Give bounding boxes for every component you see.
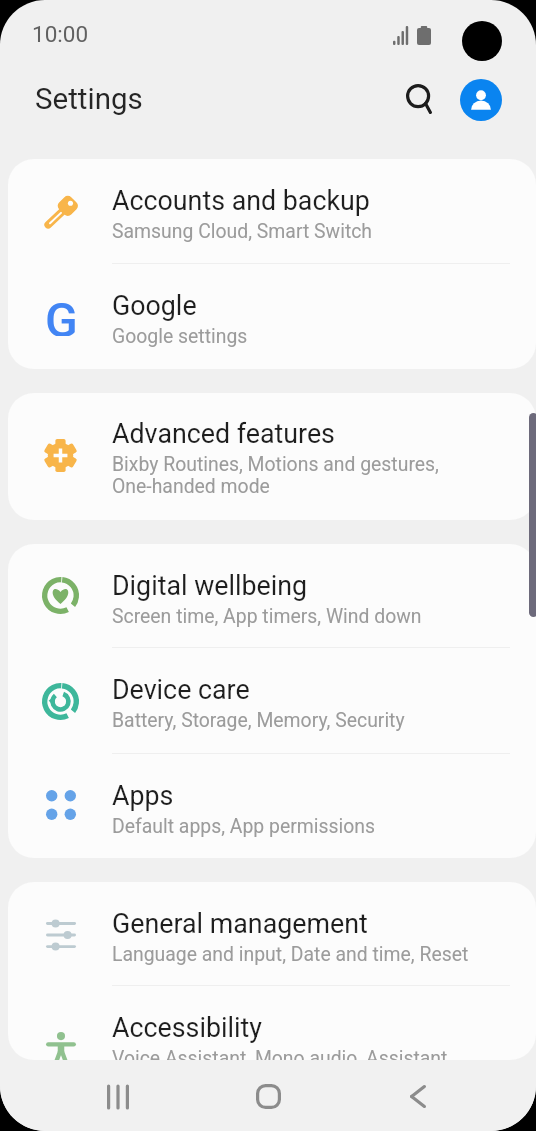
staticText: Language and input, Date and time, Reset	[112, 943, 469, 966]
button[interactable]: Search	[398, 72, 452, 126]
staticText: Google settings	[112, 325, 248, 348]
staticText: 10:00	[32, 21, 89, 47]
button[interactable]: Device care	[8, 648, 536, 754]
staticText: Google	[112, 290, 197, 321]
staticText: Accounts and backup	[112, 185, 370, 216]
button[interactable]: Digital wellbeing	[8, 544, 536, 648]
staticText: Bixby Routines, Motions and gestures, On…	[112, 453, 439, 498]
staticText: Voice Assistant, Mono audio, Assistant	[112, 1047, 448, 1060]
staticText: Accessibility	[112, 1012, 262, 1043]
staticText: Apps	[112, 780, 174, 811]
staticText: G	[45, 292, 78, 336]
staticText: Screen time, App timers, Wind down	[112, 605, 422, 628]
staticText: Settings	[35, 82, 143, 117]
button[interactable]: Accounts and backup	[8, 159, 536, 264]
button[interactable]: Recents	[73, 1060, 163, 1131]
button[interactable]: General management	[8, 882, 536, 986]
button[interactable]: Home	[223, 1060, 313, 1131]
button[interactable]: G	[8, 264, 536, 369]
staticText: Advanced features	[112, 418, 335, 449]
staticText: Samsung Cloud, Smart Switch	[112, 220, 373, 243]
staticText: Digital wellbeing	[112, 570, 308, 601]
staticText: Battery, Storage, Memory, Security	[112, 709, 405, 732]
staticText: Device care	[112, 674, 250, 705]
staticText: Default apps, App permissions	[112, 815, 376, 838]
button[interactable]: Back	[373, 1060, 463, 1131]
button[interactable]: Account	[460, 79, 502, 121]
staticText: General management	[112, 908, 368, 939]
button[interactable]: Apps	[8, 754, 536, 858]
button[interactable]: Accessibility	[8, 986, 536, 1060]
button[interactable]: Advanced features	[8, 393, 536, 520]
